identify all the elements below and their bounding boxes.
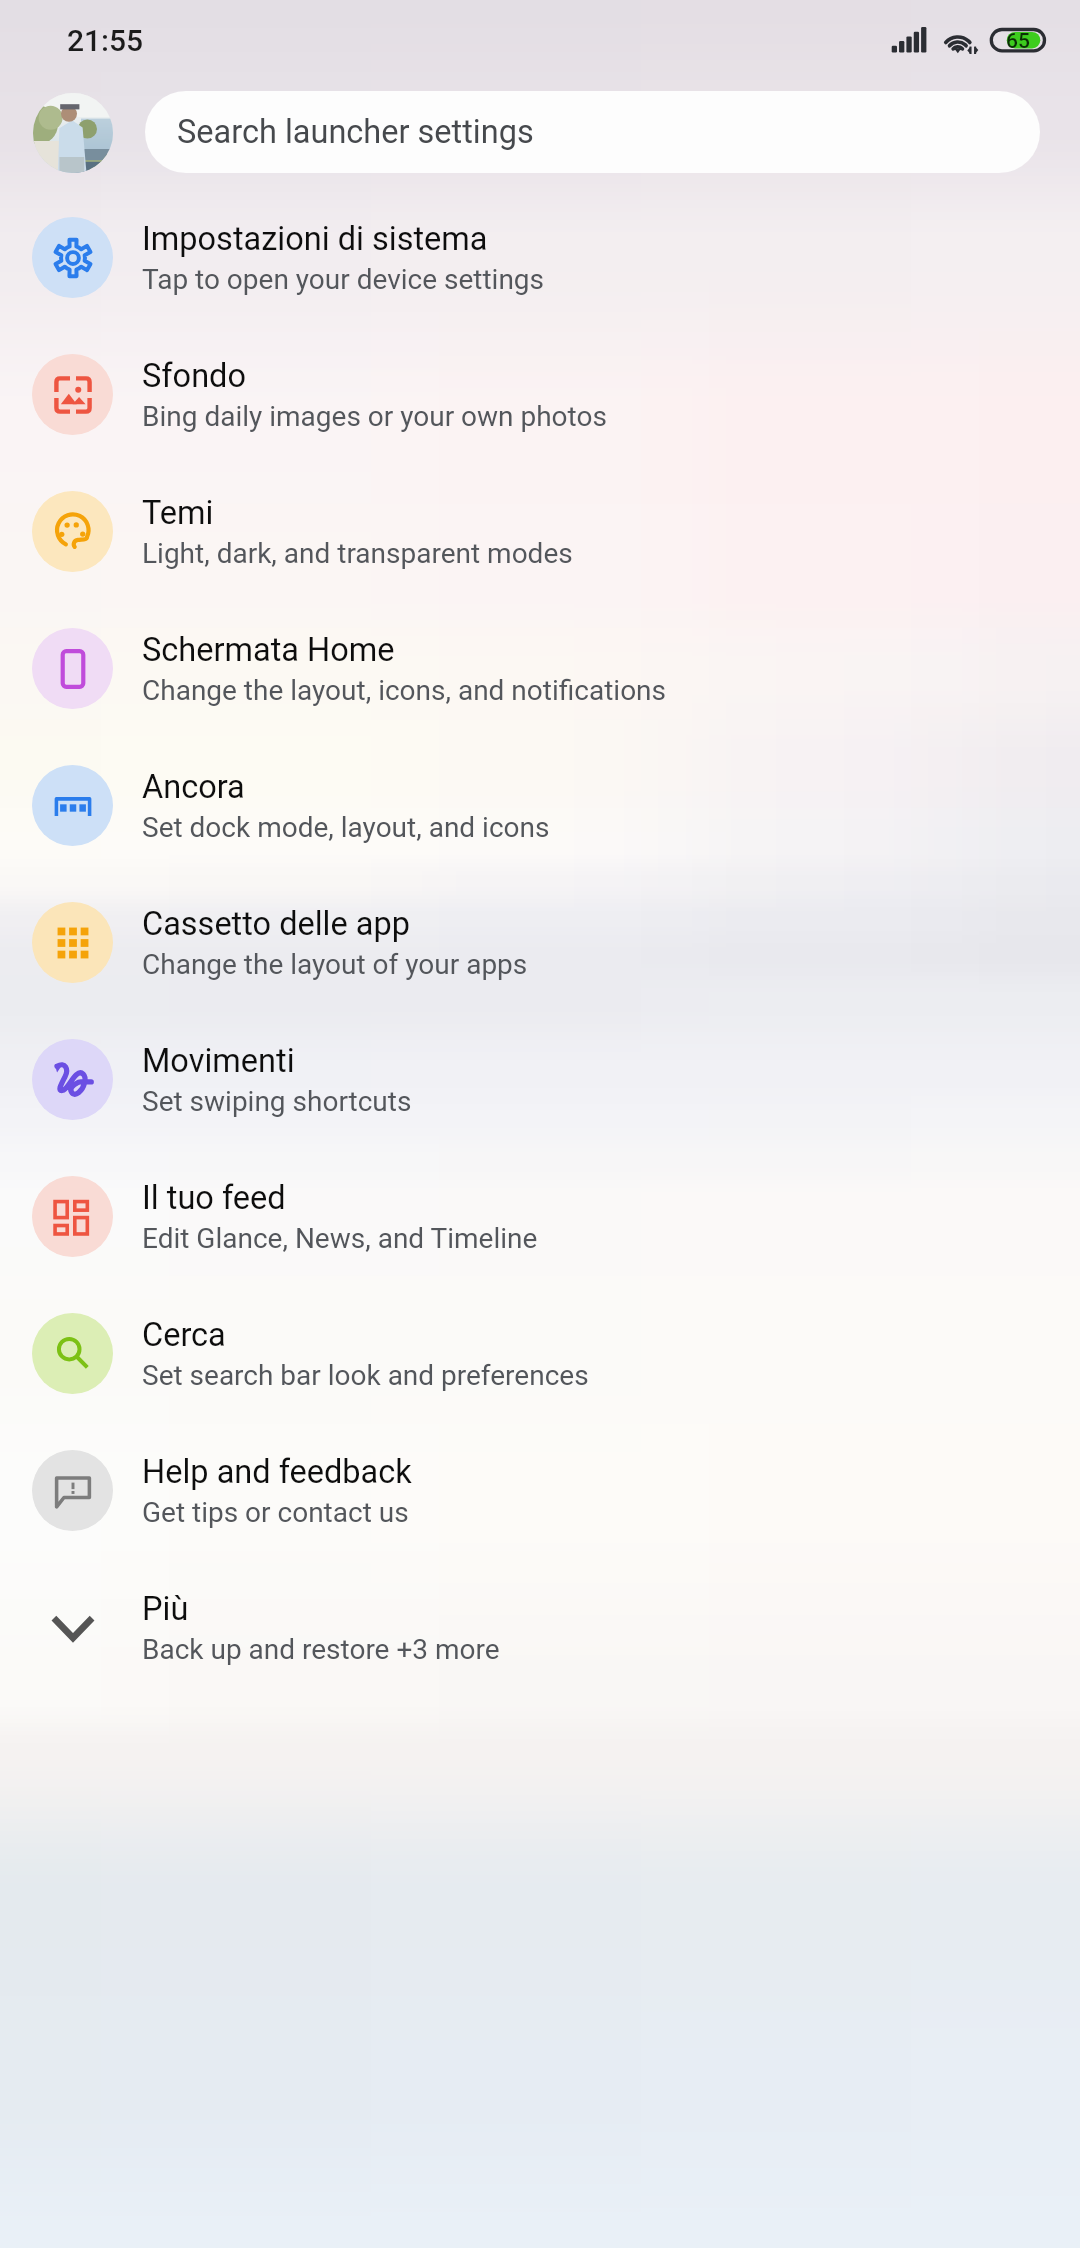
- staticText: Impostazioni di sistema: [142, 220, 488, 258]
- staticText: Sfondo: [142, 357, 246, 395]
- button[interactable]: Impostazioni di sistema: [0, 189, 1080, 326]
- other: Expand more: [32, 1587, 113, 1668]
- button[interactable]: Movimenti: [0, 1011, 1080, 1148]
- staticText: Search launcher settings: [177, 113, 534, 151]
- staticText: Edit Glance, News, and Timeline: [142, 1222, 538, 1255]
- button[interactable]: Expand more: [0, 1559, 1080, 1696]
- staticText: Cerca: [142, 1316, 226, 1354]
- button[interactable]: Sfondo: [0, 326, 1080, 463]
- staticText: Set dock mode, layout, and icons: [142, 811, 550, 844]
- staticText: Bing daily images or your own photos: [142, 400, 607, 433]
- staticText: Ancora: [142, 768, 245, 806]
- button[interactable]: Ancora: [0, 737, 1080, 874]
- staticText: Il tuo feed: [142, 1179, 286, 1217]
- button[interactable]: Temi: [0, 463, 1080, 600]
- staticText: Light, dark, and transparent modes: [142, 537, 573, 570]
- staticText: Temi: [142, 494, 214, 532]
- staticText: Cassetto delle app: [142, 905, 410, 943]
- staticText: Back up and restore +3 more: [142, 1633, 500, 1666]
- staticText: 21:55: [67, 23, 144, 58]
- staticText: Get tips or contact us: [142, 1496, 409, 1529]
- staticText: Più: [142, 1590, 189, 1628]
- staticText: Set search bar look and preferences: [142, 1359, 589, 1392]
- button[interactable]: Il tuo feed: [0, 1148, 1080, 1285]
- button[interactable]: Cerca: [0, 1285, 1080, 1422]
- staticText: Change the layout of your apps: [142, 948, 528, 981]
- staticText: Set swiping shortcuts: [142, 1085, 412, 1118]
- button[interactable]: Help and feedback: [0, 1422, 1080, 1559]
- staticText: Help and feedback: [142, 1453, 412, 1491]
- button[interactable]: Cassetto delle app: [0, 874, 1080, 1011]
- staticText: Movimenti: [142, 1042, 295, 1080]
- button[interactable]: Search launcher settings: [145, 91, 1040, 173]
- staticText: Schermata Home: [142, 631, 395, 669]
- staticText: Tap to open your device settings: [142, 263, 545, 296]
- staticText: Change the layout, icons, and notificati…: [142, 674, 667, 707]
- staticText: 65: [1006, 29, 1030, 54]
- button[interactable]: Schermata Home: [0, 600, 1080, 737]
- button[interactable]: Profile: [33, 93, 113, 173]
